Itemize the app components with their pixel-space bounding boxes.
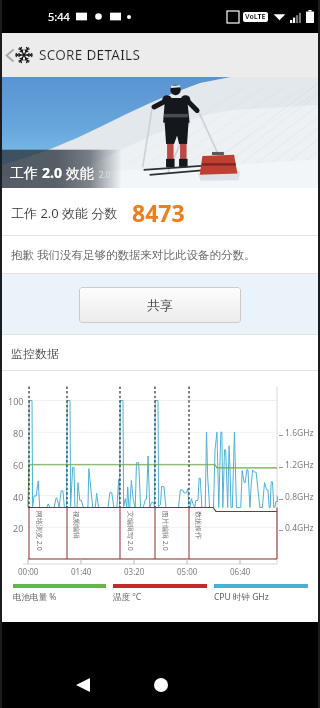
staticText: 1.2GHz — [285, 459, 314, 471]
staticText: 电池电量 % — [13, 591, 57, 603]
staticText: 60 — [13, 459, 24, 471]
staticText: 共享 — [147, 297, 173, 313]
staticText: 抱歉 我们没有足够的数据来对比此设备的分数。 — [11, 247, 256, 263]
staticText: 01:40 — [71, 566, 92, 577]
button[interactable]: Home — [146, 670, 176, 700]
staticText: 8473 — [132, 197, 185, 228]
staticText: 工作 — [10, 163, 42, 182]
staticText: 03:20 — [124, 566, 145, 577]
staticText: 监控数据 — [11, 346, 59, 361]
staticText: 2.0 — [99, 169, 111, 180]
button[interactable]: 共享 — [79, 287, 241, 323]
staticText: 温度 °C — [113, 591, 142, 603]
staticText: 40 — [13, 491, 24, 503]
staticText: 05:00 — [177, 566, 198, 577]
staticText: 效能 — [62, 163, 94, 182]
staticText: 5:44 — [48, 9, 70, 24]
staticText: 100 — [8, 395, 24, 407]
staticText: CPU 时钟 GHz — [214, 591, 269, 603]
staticText: 20 — [13, 522, 24, 534]
staticText: 80 — [13, 427, 24, 439]
staticText: 06:40 — [230, 566, 251, 577]
staticText: VoLTE — [245, 12, 266, 22]
staticText: SCORE DETAILS — [39, 46, 141, 64]
button[interactable]: Back — [68, 670, 98, 700]
staticText: 00:00 — [18, 566, 39, 577]
staticText: 1.6GHz — [285, 427, 314, 439]
button[interactable]: Back — [0, 42, 14, 68]
staticText: 2.0 — [42, 163, 62, 182]
staticText: 0.8GHz — [285, 491, 314, 503]
staticText: 0.4GHz — [285, 522, 314, 534]
staticText: 工作 2.0 效能 分数 — [11, 204, 118, 222]
